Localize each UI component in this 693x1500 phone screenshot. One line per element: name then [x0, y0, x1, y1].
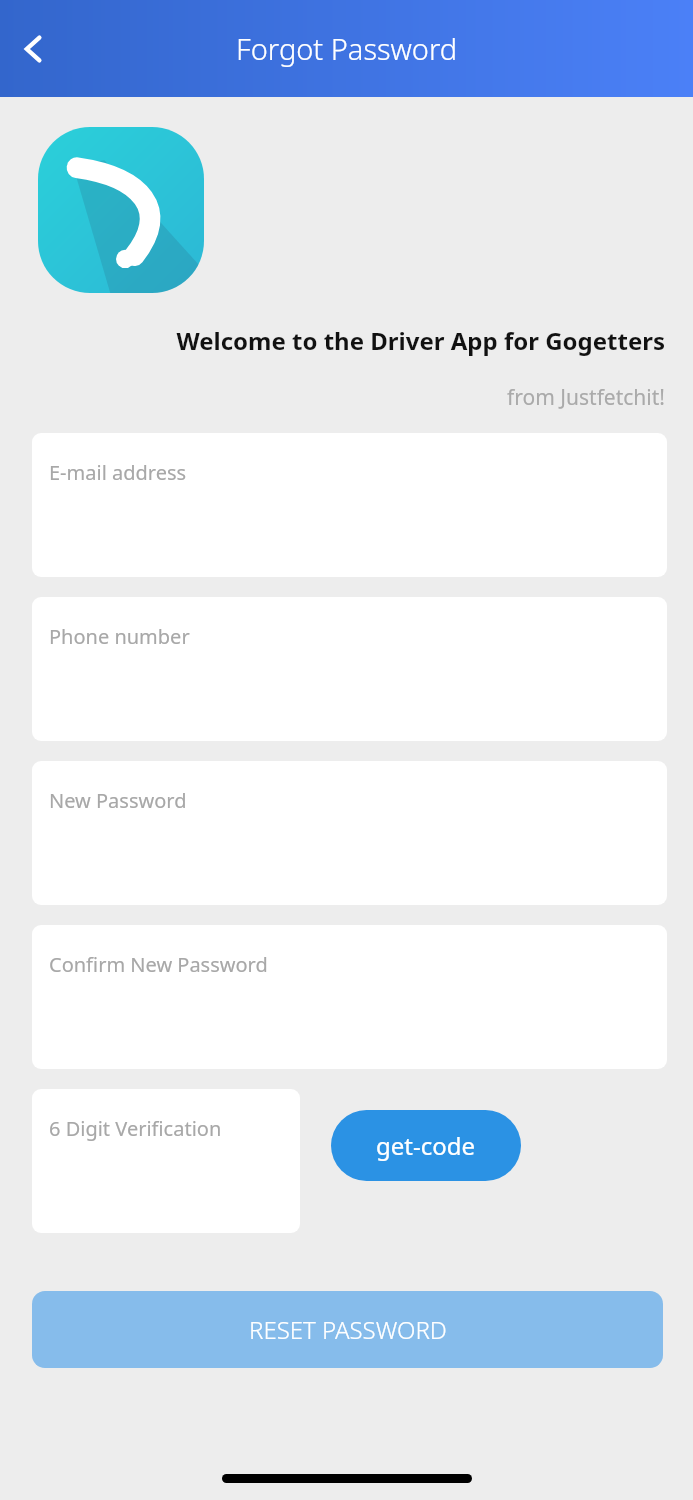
staticText: Confirm New Password: [49, 951, 268, 978]
staticText: Welcome to the Driver App for Gogetters: [176, 324, 665, 357]
staticText: E-mail address: [49, 459, 187, 486]
button[interactable]: RESET PASSWORD: [32, 1291, 663, 1368]
staticText: RESET PASSWORD: [249, 1313, 447, 1346]
staticText: Forgot Password: [236, 29, 458, 68]
button[interactable]: Back: [6, 21, 62, 77]
button[interactable]: E-mail address: [32, 433, 667, 577]
staticText: 6 Digit Verification: [49, 1115, 222, 1142]
staticText: from Justfetchit!: [507, 383, 665, 412]
staticText: Phone number: [49, 623, 190, 650]
button[interactable]: Confirm New Password: [32, 925, 667, 1069]
staticText: New Password: [49, 787, 187, 814]
button[interactable]: get-code: [331, 1110, 521, 1181]
button[interactable]: 6 Digit Verification: [32, 1089, 300, 1233]
button[interactable]: New Password: [32, 761, 667, 905]
button[interactable]: Phone number: [32, 597, 667, 741]
staticText: get-code: [376, 1129, 476, 1162]
